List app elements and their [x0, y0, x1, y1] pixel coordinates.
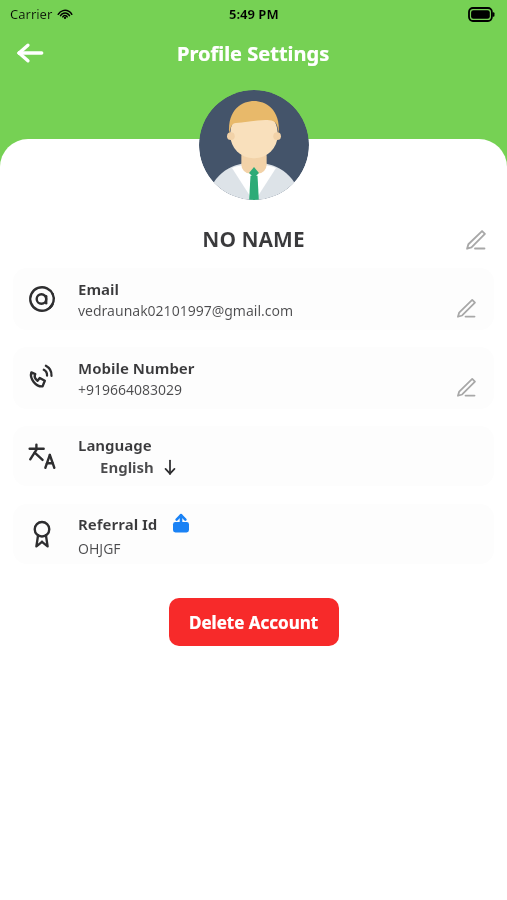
staticText: Profile Settings: [177, 40, 330, 67]
button[interactable]: Mobile Number: [13, 347, 494, 409]
staticText: OHJGF: [78, 539, 121, 558]
staticText: NO NAME: [202, 225, 305, 254]
button[interactable]: Email: [13, 268, 494, 330]
button[interactable]: Language: [13, 426, 494, 486]
button[interactable]: Referral Id: [13, 504, 494, 564]
button[interactable]: Profile photo: [199, 90, 309, 200]
button[interactable]: Edit Email: [448, 290, 482, 324]
staticText: Email: [78, 279, 119, 299]
staticText: English: [100, 457, 154, 477]
staticText: Referral Id: [78, 514, 158, 534]
button[interactable]: Back: [8, 31, 52, 75]
staticText: +919664083029: [78, 380, 183, 399]
staticText: Mobile Number: [78, 358, 195, 378]
staticText: Carrier: [10, 5, 53, 23]
button[interactable]: Share referral id: [168, 511, 194, 537]
button[interactable]: Delete Account: [169, 598, 339, 646]
button[interactable]: Edit Mobile Number: [448, 369, 482, 403]
staticText: Language: [78, 435, 152, 455]
staticText: Delete Account: [189, 611, 319, 634]
staticText: vedraunak02101997@gmail.com: [78, 301, 294, 320]
button[interactable]: Edit name: [455, 222, 495, 256]
staticText: 5:49 PM: [229, 5, 279, 23]
